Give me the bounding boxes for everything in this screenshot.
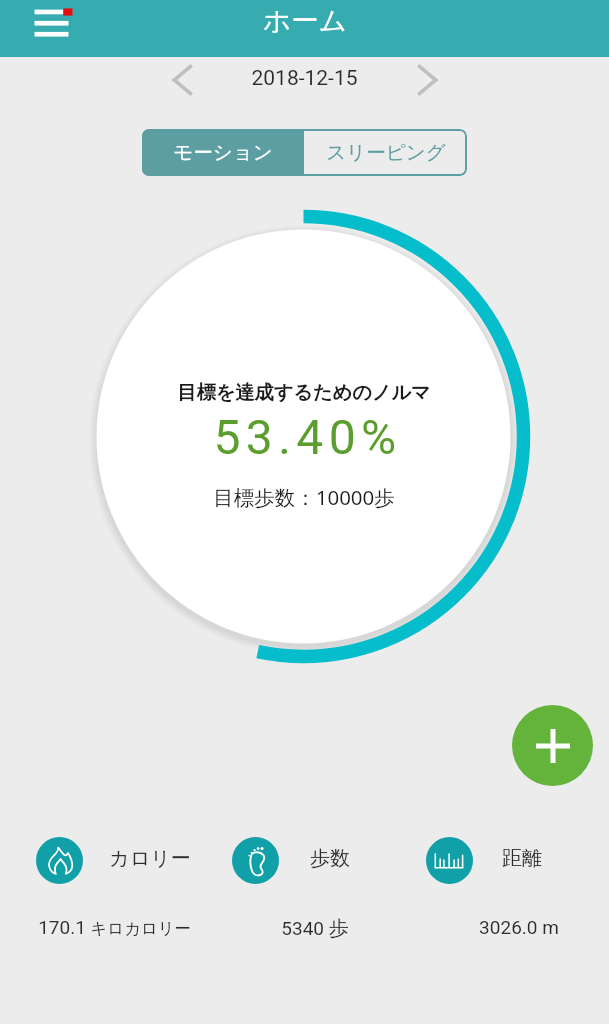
- staticText: 歩数: [310, 846, 350, 871]
- staticText: 距離: [502, 846, 542, 871]
- staticText: モーション: [173, 140, 273, 165]
- staticText: 3026.0 m: [479, 916, 559, 938]
- staticText: 170.1 キロカロリー: [38, 916, 191, 938]
- staticText: 5340 歩: [281, 916, 349, 941]
- button[interactable]: Previous day: [160, 59, 206, 101]
- staticText: スリーピング: [326, 140, 446, 165]
- button[interactable]: Distance: [426, 837, 473, 884]
- staticText: 2018-12-15: [251, 66, 358, 91]
- button[interactable]: スリーピング: [304, 129, 467, 176]
- staticText: 目標を達成するためのノルマ: [177, 381, 431, 405]
- staticText: 53.40%: [213, 409, 402, 465]
- button[interactable]: Next day: [404, 59, 450, 101]
- staticText: カロリー: [109, 846, 191, 871]
- staticText: ホーム: [263, 4, 347, 39]
- button[interactable]: Steps: [232, 837, 279, 884]
- button[interactable]: Add: [512, 705, 593, 786]
- button[interactable]: モーション: [142, 129, 304, 176]
- button[interactable]: Menu: [23, 0, 80, 57]
- button[interactable]: Calories: [36, 837, 83, 884]
- staticText: 目標歩数：10000歩: [213, 483, 395, 511]
